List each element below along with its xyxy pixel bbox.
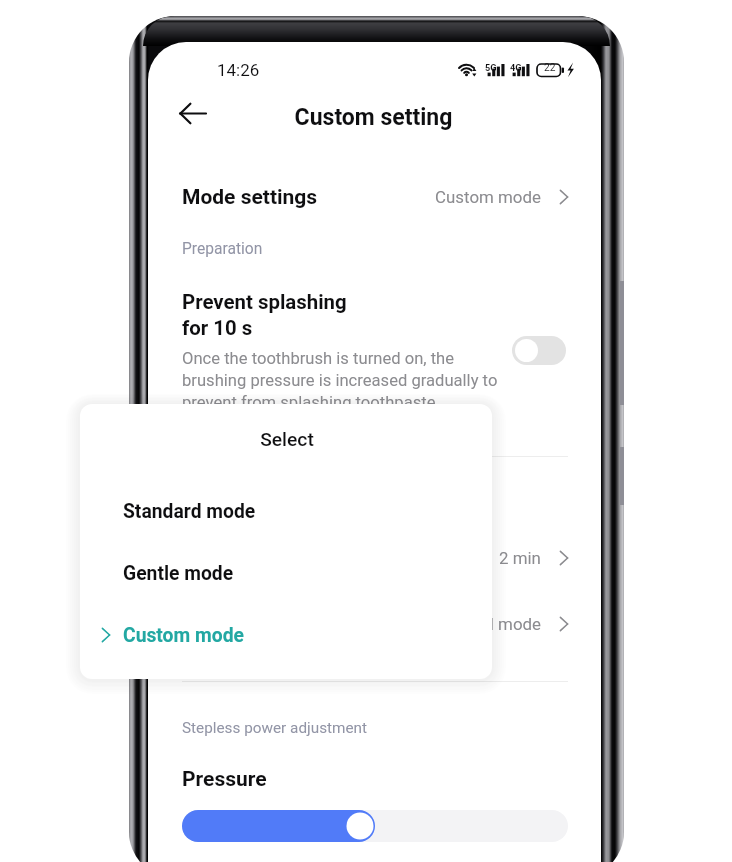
button[interactable]: Custom mode <box>80 614 492 656</box>
staticText: Select <box>81 428 492 451</box>
button[interactable]: Mode settings <box>148 169 601 225</box>
staticText: Pressure <box>182 767 267 792</box>
button[interactable]: Prevent splashing toggle <box>512 336 566 365</box>
button[interactable]: Standard mode <box>80 490 492 532</box>
staticText: Standard mode <box>123 500 256 523</box>
staticText: Preparation <box>182 240 263 258</box>
staticText: Custom setting <box>148 104 600 131</box>
staticText: 5G <box>485 62 497 73</box>
button[interactable]: Brushing mode <box>148 596 601 652</box>
staticText: Prevent splashing for 10 s <box>182 290 347 340</box>
staticText: 14:26 <box>217 60 260 80</box>
staticText: 4G <box>510 62 522 73</box>
staticText: Brushing time <box>182 546 315 571</box>
staticText: Custom mode <box>435 187 541 207</box>
staticText: 22 <box>544 62 556 74</box>
button[interactable]: Back <box>170 91 214 135</box>
staticText: Stepless power adjustment <box>182 719 368 737</box>
staticText: Standard mode <box>426 614 541 634</box>
staticText: Brushing mode <box>182 612 326 637</box>
staticText: Once the toothbrush is turned on, the br… <box>182 349 518 412</box>
button[interactable]: Brushing time <box>148 530 601 586</box>
staticText: Gentle mode <box>123 562 234 585</box>
staticText: 2 min <box>499 548 541 568</box>
button[interactable]: Gentle mode <box>80 552 492 594</box>
staticText: Custom mode <box>123 624 244 647</box>
staticText: Mode settings <box>182 185 318 210</box>
button[interactable]: Pressure <box>182 810 568 842</box>
